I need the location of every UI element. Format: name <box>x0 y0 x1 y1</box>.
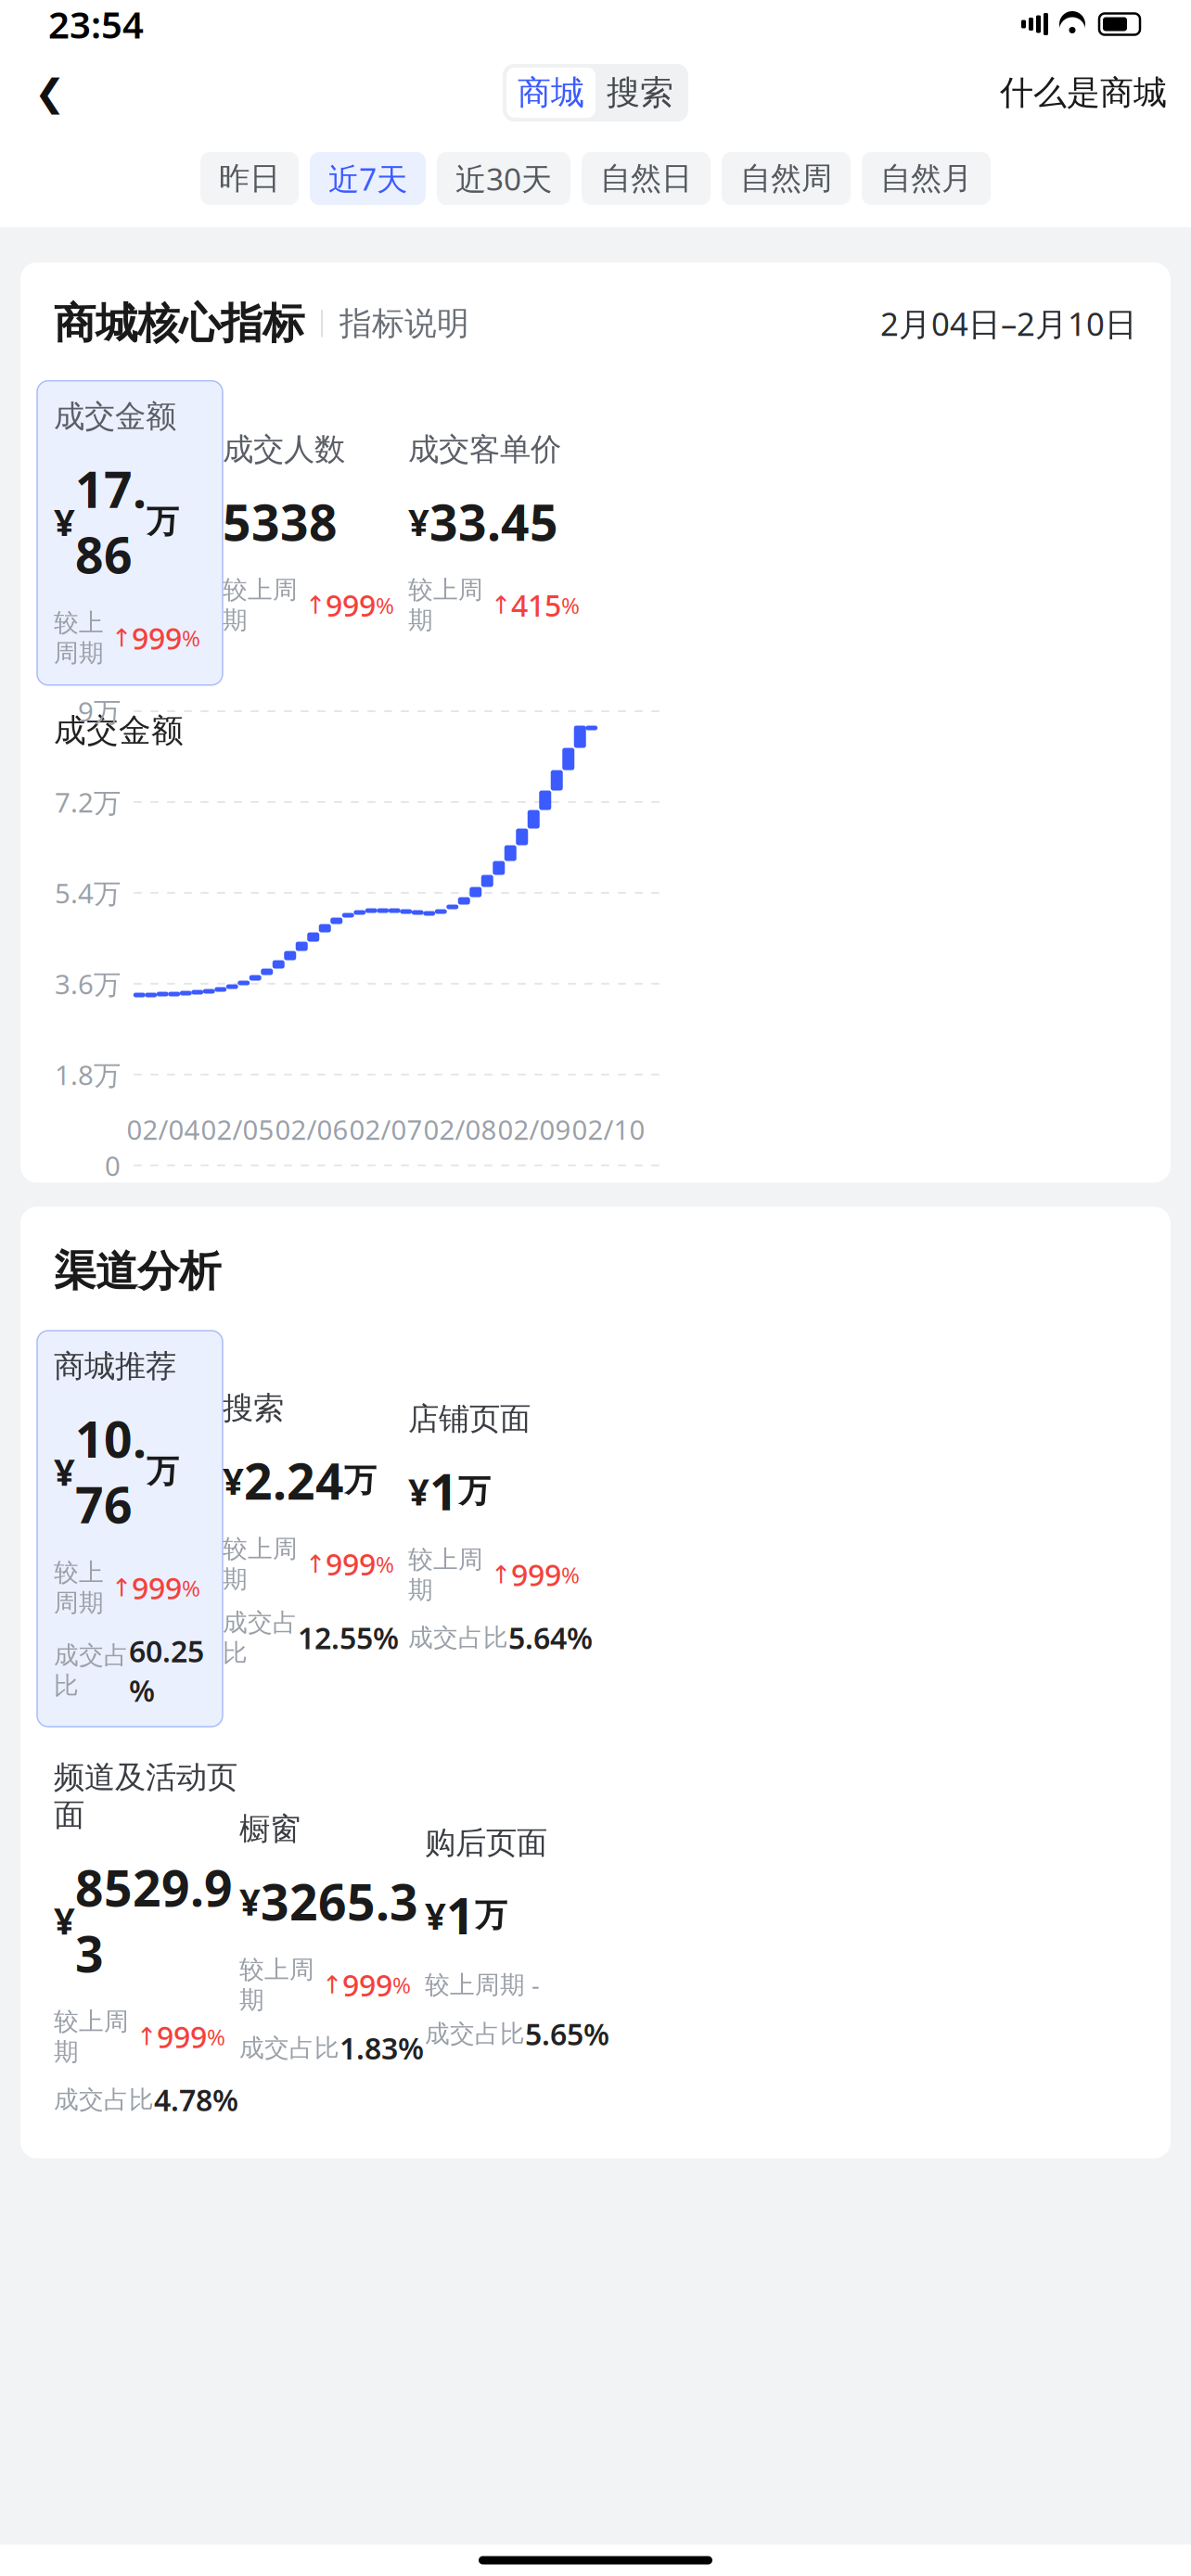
staticText: ↑ <box>483 1561 511 1589</box>
staticText: ❮ <box>34 72 66 114</box>
staticText: ↑ <box>314 1971 342 1999</box>
staticText: 店铺页面 <box>408 1400 531 1438</box>
staticText: 较上周期 <box>408 575 483 636</box>
button[interactable]: 店铺页面 <box>408 1400 594 1658</box>
button[interactable]: 近30天 <box>437 152 570 205</box>
staticText: % <box>182 623 200 653</box>
staticText: 02/04 <box>127 1111 200 1147</box>
button[interactable]: 什么是商城 <box>1000 67 1167 119</box>
button[interactable]: 频道及活动页面 <box>54 1758 239 2119</box>
staticText: 近30天 <box>455 158 552 199</box>
staticText: 5.4万 <box>55 875 121 911</box>
staticText: ↑ <box>483 591 511 619</box>
staticText: 成交占比 <box>239 2033 339 2063</box>
staticText: 8529.93 <box>75 1855 233 1986</box>
staticText: 999 <box>157 2017 207 2056</box>
staticText: 0 <box>105 1147 121 1183</box>
staticText: 成交占比 <box>223 1607 298 1668</box>
button[interactable]: 近7天 <box>310 152 426 205</box>
staticText: 5.64% <box>508 1618 593 1657</box>
staticText: 万 <box>458 1471 491 1511</box>
staticText: 成交金额 <box>54 711 184 751</box>
button[interactable]: 购后页面 <box>425 1824 610 2054</box>
staticText: ↑ <box>129 2023 157 2051</box>
staticText: 10.76 <box>75 1406 147 1537</box>
staticText: 购后页面 <box>425 1824 547 1862</box>
staticText: 5.65% <box>525 2014 609 2054</box>
staticText: 1 <box>446 1882 475 1948</box>
staticText: 23:54 <box>48 0 144 49</box>
button[interactable]: 橱窗 <box>239 1810 425 2068</box>
button[interactable]: 昨日 <box>200 152 299 205</box>
staticText: 2月04日–2月10日 <box>880 302 1137 345</box>
staticText: - <box>525 1968 540 2001</box>
staticText: 万 <box>147 1452 179 1491</box>
button[interactable]: 成交金额 <box>37 381 223 685</box>
staticText: 商城推荐 <box>54 1347 176 1385</box>
staticText: 999 <box>132 1568 182 1608</box>
staticText: 17.86 <box>75 456 147 587</box>
staticText: ¥ <box>54 497 75 546</box>
button[interactable]: 指标说明 <box>339 304 469 343</box>
button[interactable]: 成交人数 <box>223 430 408 636</box>
staticText: ¥ <box>239 1877 261 1926</box>
staticText: 较上周期 <box>239 1954 314 2015</box>
staticText: 成交占比 <box>54 1640 129 1701</box>
staticText: % <box>376 1549 394 1579</box>
staticText: 商城 <box>518 72 584 113</box>
button[interactable]: 搜索 <box>223 1389 408 1668</box>
staticText: 自然月 <box>880 159 972 197</box>
staticText: 较上周期 <box>425 1970 525 2000</box>
staticText: 2.24 <box>244 1448 344 1513</box>
button[interactable]: 成交客单价 <box>408 430 594 636</box>
staticText: ¥ <box>54 1447 75 1496</box>
staticText: 999 <box>511 1555 561 1594</box>
button[interactable]: 自然月 <box>862 152 991 205</box>
staticText: ↑ <box>298 591 326 619</box>
button[interactable]: 商城推荐 <box>37 1331 223 1727</box>
button[interactable]: 搜索 <box>595 68 685 118</box>
staticText: 415 <box>511 585 561 625</box>
staticText: 自然周 <box>740 159 832 197</box>
staticText: 02/10 <box>572 1111 645 1147</box>
staticText: % <box>561 590 580 620</box>
staticText: 60.25% <box>129 1631 204 1710</box>
staticText: 1 <box>429 1458 458 1524</box>
staticText: 较上周期 <box>223 575 298 636</box>
staticText: 7.2万 <box>55 784 121 820</box>
staticText: 渠道分析 <box>54 1246 221 1297</box>
staticText: 什么是商城 <box>1000 72 1167 113</box>
staticText: 搜索 <box>607 72 673 113</box>
staticText: 较上周期 <box>408 1544 483 1605</box>
staticText: 橱窗 <box>239 1810 301 1848</box>
staticText: 33.45 <box>429 489 558 554</box>
button[interactable]: 商城 <box>506 68 595 118</box>
staticText: ↑ <box>104 1574 132 1602</box>
staticText: % <box>392 1970 411 2000</box>
staticText: 成交金额 <box>54 398 176 435</box>
button[interactable]: 自然日 <box>582 152 711 205</box>
staticText: 02/08 <box>423 1111 497 1147</box>
staticText: % <box>182 1573 200 1603</box>
staticText: 12.55% <box>298 1618 399 1657</box>
staticText: 万 <box>475 1895 507 1935</box>
staticText: 02/07 <box>349 1111 423 1147</box>
staticText: 02/05 <box>201 1111 274 1147</box>
staticText: ↑ <box>298 1550 326 1578</box>
staticText: 指标说明 <box>339 304 469 343</box>
staticText: 较上周期 <box>54 608 104 668</box>
staticText: 成交占比 <box>425 2019 525 2049</box>
staticText: 搜索 <box>223 1389 284 1427</box>
staticText: 成交占比 <box>408 1623 508 1653</box>
staticText: 9万 <box>78 693 121 729</box>
staticText: 成交客单价 <box>408 430 561 468</box>
staticText: 999 <box>326 1544 376 1584</box>
staticText: 999 <box>326 585 376 625</box>
button[interactable]: 自然周 <box>722 152 851 205</box>
staticText: 999 <box>132 618 182 658</box>
staticText: 较上周期 <box>223 1534 298 1594</box>
staticText: 频道及活动页面 <box>54 1758 237 1834</box>
staticText: 02/06 <box>275 1111 348 1147</box>
button[interactable]: Back <box>24 67 76 119</box>
staticText: 4.78% <box>154 2080 238 2119</box>
